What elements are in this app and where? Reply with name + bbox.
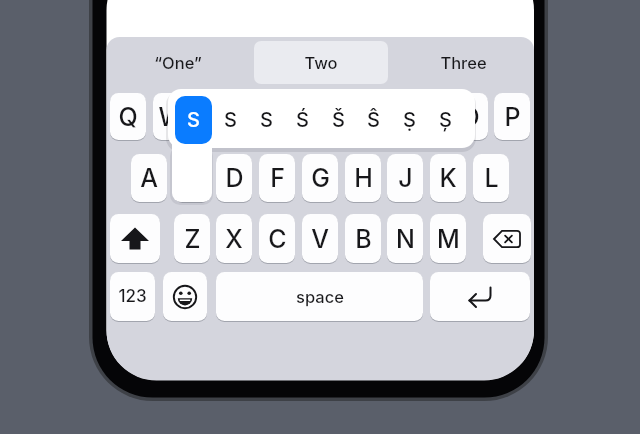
button[interactable]: Ś	[284, 96, 320, 144]
staticText: Two	[304, 53, 338, 73]
button[interactable]: Š	[320, 96, 356, 144]
staticText: U	[375, 102, 394, 132]
button[interactable]: C	[259, 214, 295, 263]
button[interactable]: F	[259, 154, 295, 202]
staticText: W	[158, 102, 184, 132]
staticText: K	[439, 163, 457, 193]
staticText: E	[205, 102, 221, 132]
button[interactable]	[163, 272, 207, 321]
button[interactable]: “One”	[111, 41, 245, 84]
staticText: “One”	[154, 53, 202, 73]
staticText: space	[296, 287, 344, 307]
staticText: Q	[118, 102, 138, 132]
button[interactable]: O	[452, 93, 488, 140]
button[interactable]: R	[238, 93, 274, 140]
button[interactable]: K	[430, 154, 466, 202]
button[interactable]: Ș	[427, 96, 463, 144]
button[interactable]: V	[302, 214, 338, 263]
staticText: P	[504, 102, 521, 132]
staticText: L	[484, 163, 499, 193]
button[interactable]: U	[366, 93, 402, 140]
staticText: M	[437, 224, 460, 254]
staticText: H	[354, 163, 373, 193]
button[interactable]: J	[387, 154, 423, 202]
staticText: N	[396, 224, 415, 254]
button[interactable]: S	[212, 96, 248, 144]
button[interactable]: H	[345, 154, 381, 202]
staticText: 123	[118, 286, 147, 307]
button[interactable]: M	[430, 214, 466, 263]
staticText: Ś	[296, 108, 309, 132]
staticText: C	[268, 224, 287, 254]
button[interactable]: Three	[396, 41, 530, 84]
button[interactable]	[110, 214, 160, 263]
button[interactable]: A	[131, 154, 167, 202]
button[interactable]: space	[216, 272, 423, 321]
staticText: Three	[440, 53, 487, 73]
staticText: Š	[332, 108, 345, 132]
button[interactable]: X	[216, 214, 252, 263]
button[interactable]	[483, 214, 531, 263]
staticText: Ŝ	[367, 108, 380, 132]
staticText: A	[140, 163, 158, 193]
button[interactable]	[430, 272, 530, 321]
staticText: F	[270, 163, 285, 193]
staticText: V	[311, 224, 329, 254]
button[interactable]: Ŝ	[355, 96, 391, 144]
button[interactable]: S	[175, 96, 212, 144]
button[interactable]: Z	[174, 214, 210, 263]
button[interactable]: L	[473, 154, 509, 202]
button[interactable]	[174, 154, 210, 202]
staticText: Ș	[439, 108, 452, 132]
staticText: Y	[333, 102, 351, 132]
button[interactable]: Q	[110, 93, 146, 140]
staticText: Z	[184, 224, 201, 254]
staticText: R	[248, 102, 265, 132]
staticText: S	[260, 108, 273, 132]
staticText: D	[225, 163, 244, 193]
button[interactable]: Two	[254, 41, 388, 84]
button[interactable]: I	[409, 93, 445, 140]
staticText: S	[187, 108, 200, 132]
staticText: S	[224, 108, 237, 132]
button[interactable]: G	[302, 154, 338, 202]
button[interactable]: N	[387, 214, 423, 263]
staticText: J	[398, 163, 413, 193]
button[interactable]: Y	[324, 93, 360, 140]
button[interactable]: Ṣ	[391, 96, 427, 144]
button[interactable]: W	[153, 93, 189, 140]
staticText: O	[460, 102, 480, 132]
staticText: Ṣ	[403, 108, 416, 132]
button[interactable]: B	[345, 214, 381, 263]
button[interactable]: S	[248, 96, 284, 144]
button[interactable]: E	[195, 93, 231, 140]
button[interactable]: T	[281, 93, 317, 140]
button[interactable]: D	[216, 154, 252, 202]
button[interactable]: 123	[110, 272, 155, 321]
button[interactable]: P	[494, 93, 530, 140]
staticText: X	[225, 224, 243, 254]
staticText: B	[355, 224, 372, 254]
staticText: T	[291, 102, 308, 132]
staticText: G	[311, 163, 330, 193]
